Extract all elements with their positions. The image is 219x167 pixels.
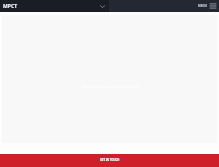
button[interactable]: Expand menu [98,2,107,11]
staticText: GET IN TOUCH [100,158,120,162]
button[interactable]: MPCT [0,3,20,10]
staticText: MPCT [3,3,18,10]
staticText: MENU [198,4,208,8]
button[interactable]: GET IN TOUCH [0,154,219,167]
button[interactable]: Open navigation menu [210,3,216,9]
button[interactable]: MENU [197,4,210,8]
